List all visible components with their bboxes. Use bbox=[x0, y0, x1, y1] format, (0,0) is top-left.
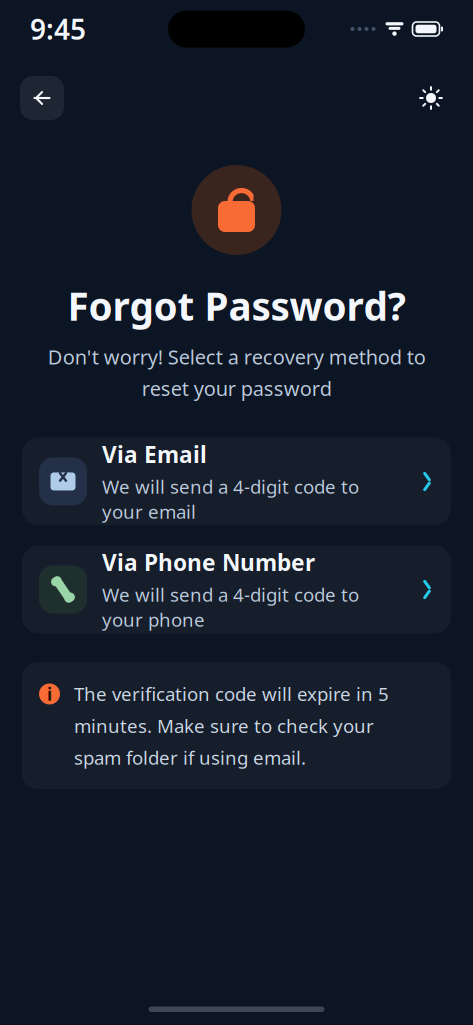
staticText: i bbox=[47, 682, 52, 705]
button[interactable]: Via Email bbox=[22, 437, 451, 525]
button[interactable]: Brightness bbox=[409, 76, 453, 120]
staticText: We will send a 4-digit code to your phon… bbox=[102, 582, 359, 632]
staticText: The verification code will expire in 5 m… bbox=[74, 681, 389, 770]
staticText: 9:45 bbox=[30, 10, 86, 48]
staticText: Via Phone Number bbox=[102, 547, 315, 577]
staticText: Forgot Password? bbox=[67, 280, 405, 331]
staticText: We will send a 4-digit code to your emai… bbox=[102, 474, 359, 524]
button[interactable]: Via Phone Number bbox=[22, 545, 451, 633]
staticText: Via Email bbox=[102, 439, 207, 469]
button[interactable]: Back bbox=[20, 76, 64, 120]
staticText: Don't worry! Select a recovery method to… bbox=[47, 343, 425, 401]
